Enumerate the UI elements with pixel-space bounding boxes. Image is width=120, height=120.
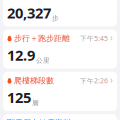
staticText: 步行＋跑步距離 <box>14 33 70 43</box>
staticText: 125 <box>7 88 31 107</box>
staticText: 層 <box>32 99 39 107</box>
staticText: 爬樓梯段數 <box>14 76 54 85</box>
staticText: 20,327 <box>7 3 51 22</box>
button[interactable]: 步行 <box>3 0 117 26</box>
staticText: 步 <box>52 14 59 22</box>
staticText: 下午2:26 <box>80 76 108 85</box>
staticText: 下午5:45 <box>80 34 108 43</box>
staticText: 公里 <box>36 56 50 65</box>
staticText: 顯示所有健康資料 <box>7 118 71 120</box>
button[interactable]: 顯示所有健康資料 <box>3 114 117 120</box>
button[interactable]: 步行＋跑步距離 <box>3 29 117 69</box>
button[interactable]: 爬樓梯段數 <box>3 72 117 111</box>
staticText: 12.9 <box>7 45 35 65</box>
